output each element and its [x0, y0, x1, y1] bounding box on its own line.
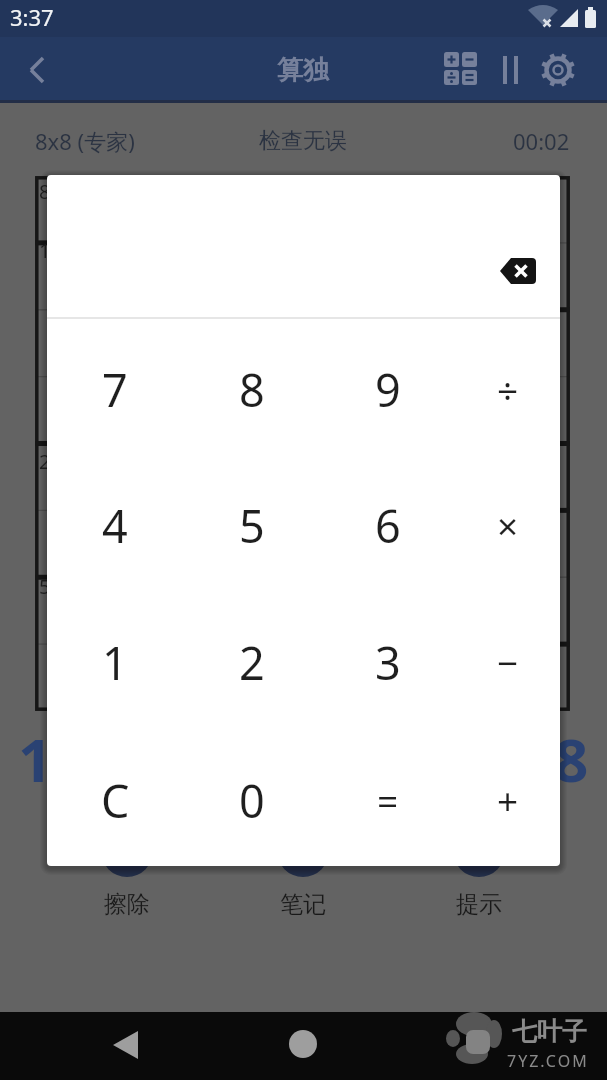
button[interactable]: 7: [55, 324, 175, 454]
button[interactable]: 5: [192, 460, 312, 590]
staticText: 1: [18, 718, 53, 800]
staticText: 笔记: [280, 890, 326, 919]
button[interactable]: [438, 46, 486, 94]
button[interactable]: [486, 46, 534, 94]
staticText: =: [377, 775, 399, 825]
staticText: 4: [248, 718, 283, 800]
staticText: ÷: [497, 364, 519, 414]
button[interactable]: [279, 1020, 327, 1068]
staticText: 2: [95, 718, 130, 800]
staticText: 提示: [456, 890, 502, 919]
button[interactable]: ÷: [448, 324, 568, 454]
staticText: 5: [39, 573, 51, 600]
staticText: 3:37: [10, 2, 54, 32]
button[interactable]: [534, 46, 582, 94]
staticText: 8x8 (专家): [35, 126, 135, 156]
button[interactable]: 0: [192, 735, 312, 865]
staticText: 8: [239, 359, 265, 420]
staticText: 检查无误: [259, 127, 347, 155]
staticText: 8: [39, 178, 51, 205]
staticText: 4: [102, 495, 128, 556]
button[interactable]: ×: [448, 460, 568, 590]
button[interactable]: 6: [328, 460, 448, 590]
staticText: 7: [102, 359, 128, 420]
button[interactable]: [101, 825, 153, 877]
staticText: 7YZ.COM: [507, 1050, 589, 1072]
staticText: −: [497, 637, 519, 687]
staticText: 1: [39, 237, 51, 264]
button[interactable]: 3: [328, 597, 448, 727]
button[interactable]: [14, 46, 62, 94]
button[interactable]: [277, 825, 329, 877]
button[interactable]: [453, 825, 505, 877]
button[interactable]: 4: [55, 460, 175, 590]
staticText: 0: [239, 770, 265, 831]
button[interactable]: C: [55, 735, 175, 865]
staticText: ×: [497, 500, 519, 550]
button[interactable]: −: [448, 597, 568, 727]
staticText: 8: [554, 718, 589, 800]
staticText: 七叶子: [512, 1016, 587, 1047]
button[interactable]: 8: [192, 324, 312, 454]
staticText: 7: [478, 718, 513, 800]
staticText: 2: [39, 448, 51, 475]
staticText: 擦除: [104, 890, 150, 919]
staticText: +: [497, 775, 519, 825]
staticText: 6: [375, 495, 401, 556]
staticText: C: [101, 770, 130, 831]
button[interactable]: [103, 1020, 151, 1068]
button[interactable]: 1: [55, 597, 175, 727]
button[interactable]: +: [448, 735, 568, 865]
staticText: 5: [239, 495, 265, 556]
staticText: 00:02: [513, 126, 570, 156]
staticText: 算独: [277, 54, 329, 87]
staticText: 9: [375, 359, 401, 420]
button[interactable]: [488, 245, 548, 297]
button[interactable]: 9: [328, 324, 448, 454]
staticText: 3: [375, 632, 401, 693]
button[interactable]: 2: [192, 597, 312, 727]
staticText: 1: [102, 632, 128, 693]
staticText: 2: [239, 632, 265, 693]
button[interactable]: =: [328, 735, 448, 865]
